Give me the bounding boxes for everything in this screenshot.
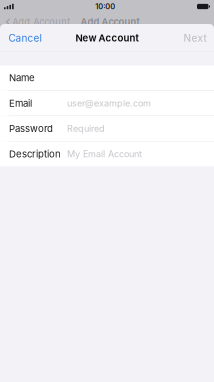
button[interactable]: Cancel (0, 25, 47, 51)
staticText: Cancel (8, 32, 41, 44)
staticText: 10:00 (95, 2, 115, 11)
button[interactable]: Next (177, 25, 214, 51)
staticText: My Email Account (67, 148, 142, 159)
button[interactable]: Name (0, 65, 214, 90)
staticText: user@example.com (67, 98, 151, 109)
button[interactable]: Email (0, 91, 214, 116)
button[interactable]: Password (0, 116, 214, 141)
staticText: Next (183, 32, 206, 44)
staticText: Description (9, 148, 61, 160)
button[interactable]: Description (0, 141, 214, 166)
staticText: Required (67, 123, 105, 134)
staticText: Name (9, 72, 35, 84)
staticText: Email (9, 97, 32, 109)
staticText: New Account (75, 32, 138, 44)
staticText: Password (9, 123, 53, 134)
staticText: Add Account (80, 16, 139, 27)
staticText: Add Account (12, 16, 70, 27)
